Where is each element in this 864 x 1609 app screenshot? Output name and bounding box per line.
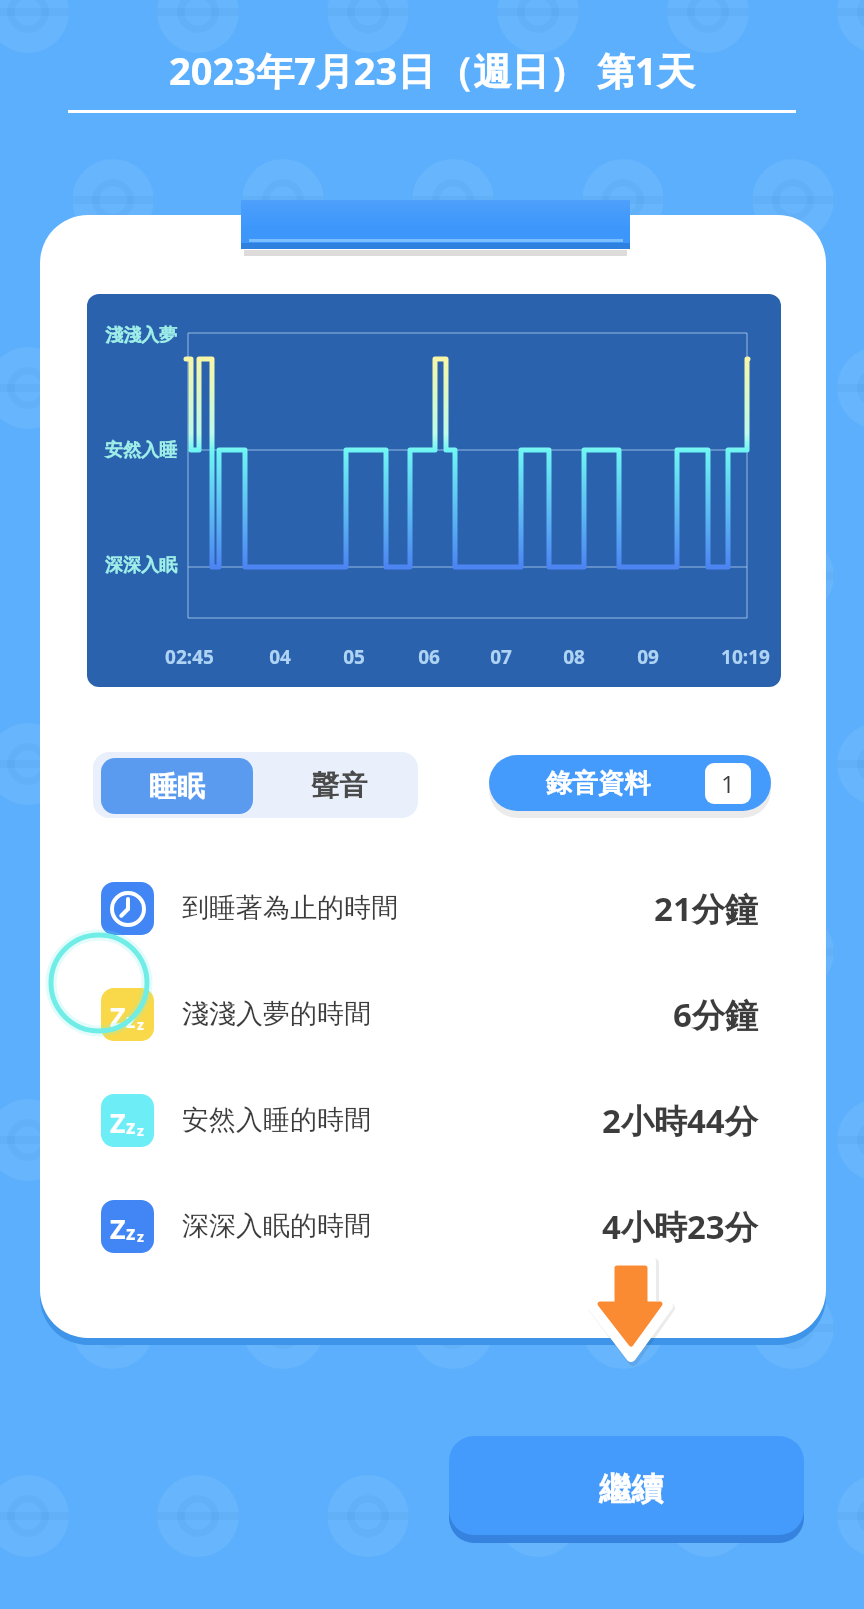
staticText: z [126, 1008, 136, 1034]
staticText: 05 [343, 644, 365, 670]
staticText: 2023年7月23日（週日） 第1天 [169, 44, 695, 96]
staticText: z [137, 1015, 144, 1034]
staticText: 淺淺入夢 [105, 324, 177, 347]
button[interactable]: 睡眠 [101, 758, 253, 814]
staticText: z [126, 1220, 136, 1246]
staticText: 繼續 [599, 1469, 663, 1509]
staticText: 睡眠 [149, 769, 205, 804]
staticText: 安然入睡 [105, 439, 177, 462]
staticText: 深深入眠 [105, 554, 177, 577]
staticText: Z [110, 1210, 126, 1247]
button[interactable]: 繼續 [449, 1436, 804, 1535]
button[interactable]: Z [101, 1080, 758, 1160]
button[interactable]: 錄音資料 [489, 755, 771, 811]
staticText: 安然入睡的時間 [182, 1103, 371, 1137]
staticText: 04 [269, 644, 291, 670]
button[interactable]: Scroll down [584, 1256, 676, 1368]
staticText: 21分鐘 [654, 886, 758, 931]
staticText: 08 [563, 644, 585, 670]
button[interactable]: Z [101, 974, 758, 1054]
button[interactable]: Z [101, 1186, 758, 1266]
button[interactable]: 到睡著為止的時間 [101, 868, 758, 948]
staticText: 10:19 [721, 644, 770, 670]
staticText: 聲音 [311, 768, 367, 803]
staticText: 02:45 [165, 644, 214, 670]
button[interactable]: Sleep tab [241, 200, 630, 249]
button[interactable]: 聲音 [259, 752, 418, 818]
staticText: 淺淺入夢的時間 [182, 997, 371, 1031]
staticText: 06 [418, 644, 440, 670]
staticText: 1 [721, 767, 735, 800]
staticText: 深深入眠的時間 [182, 1209, 371, 1243]
staticText: z [126, 1114, 136, 1140]
staticText: z [137, 1121, 144, 1140]
staticText: 6分鐘 [673, 992, 758, 1037]
staticText: 錄音資料 [546, 767, 650, 800]
staticText: 到睡著為止的時間 [182, 891, 398, 925]
staticText: Z [110, 1104, 126, 1141]
staticText: z [137, 1227, 144, 1246]
staticText: 07 [490, 644, 512, 670]
staticText: Z [110, 998, 126, 1035]
staticText: 09 [637, 644, 659, 670]
staticText: 4小時23分 [602, 1204, 758, 1249]
staticText: 2小時44分 [602, 1098, 758, 1143]
